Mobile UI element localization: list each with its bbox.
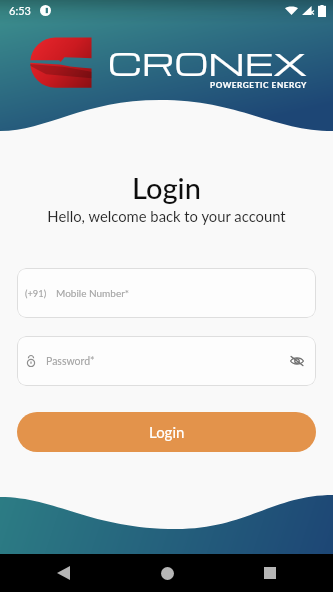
staticText: Hello, welcome back to your account — [0, 207, 333, 225]
button[interactable]: Recent apps — [257, 560, 283, 586]
staticText: CRONEX — [108, 42, 308, 83]
button[interactable]: Show password — [281, 345, 313, 377]
button[interactable]: Back — [50, 560, 76, 586]
staticText: (+91) — [25, 288, 47, 299]
button[interactable]: (+91) — [17, 268, 316, 318]
staticText: Login — [0, 170, 333, 205]
staticText: POWERGETIC ENERGY — [210, 80, 307, 90]
staticText: Password* — [46, 355, 95, 368]
button[interactable]: Home — [154, 560, 180, 586]
staticText: Mobile Number* — [56, 287, 130, 299]
button[interactable]: Login — [17, 412, 316, 452]
staticText: Login — [149, 423, 185, 441]
staticText: 6:53 — [9, 4, 31, 17]
button[interactable]: Password* — [17, 336, 316, 386]
